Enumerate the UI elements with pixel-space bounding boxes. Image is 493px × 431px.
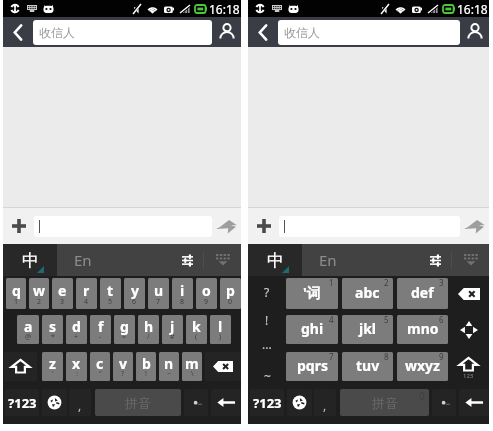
button[interactable]: k <box>186 315 207 344</box>
button[interactable]: '词 <box>286 278 338 309</box>
button[interactable]: a <box>17 315 39 344</box>
button[interactable]: Back <box>3 17 33 47</box>
staticText: 6 <box>439 315 444 325</box>
button[interactable]: i <box>172 278 193 309</box>
button[interactable]: Back <box>248 17 278 47</box>
button[interactable]: e <box>52 278 73 309</box>
button[interactable]: Move cursor <box>448 315 489 344</box>
staticText: pqrs <box>297 356 328 375</box>
button[interactable]: 收信人 <box>33 20 212 45</box>
button[interactable]: 中 <box>248 244 302 276</box>
button[interactable]: ?123 <box>5 389 39 416</box>
staticText: 收信人 <box>39 25 75 40</box>
button[interactable]: f <box>90 315 111 344</box>
button[interactable]: Contacts <box>460 17 489 47</box>
staticText: , <box>78 397 82 413</box>
staticText: 8 <box>180 297 185 307</box>
button[interactable] <box>184 389 208 416</box>
button[interactable]: , <box>314 389 336 416</box>
staticText: 3 <box>60 297 65 307</box>
button[interactable]: c <box>90 352 110 381</box>
button[interactable]: ! <box>248 306 286 334</box>
button[interactable]: ··· <box>248 334 286 362</box>
button[interactable]: l <box>210 315 231 344</box>
staticText: l <box>218 317 223 336</box>
button[interactable]: , <box>69 389 91 416</box>
staticText: - <box>99 332 102 342</box>
button[interactable]: z <box>42 352 63 381</box>
button[interactable]: Hide keyboard <box>204 244 241 276</box>
button[interactable]: v <box>113 352 133 381</box>
button[interactable]: Enter <box>211 389 241 416</box>
button[interactable]: Backspace <box>205 352 241 381</box>
staticText: : <box>76 369 78 379</box>
button[interactable]: j <box>162 315 183 344</box>
button[interactable]: Keyboard settings <box>419 244 451 276</box>
button[interactable]: Contacts <box>212 17 241 47</box>
button[interactable]: x <box>66 352 87 381</box>
button[interactable]: wxyz <box>397 352 448 381</box>
button[interactable]: g <box>114 315 135 344</box>
button[interactable]: abc <box>342 278 393 309</box>
button[interactable] <box>279 216 460 237</box>
staticText: t <box>107 281 114 300</box>
button[interactable]: n <box>159 352 179 381</box>
button[interactable]: ghi <box>286 315 338 344</box>
staticText: En <box>74 250 92 270</box>
button[interactable]: ?123 <box>250 389 284 416</box>
button[interactable]: Keyboard settings <box>171 244 203 276</box>
button[interactable]: Switch language <box>42 389 67 416</box>
staticText: b <box>142 354 151 373</box>
button[interactable]: w <box>29 278 49 309</box>
button[interactable]: Shift <box>448 352 489 381</box>
button[interactable]: h <box>138 315 159 344</box>
button[interactable] <box>432 389 456 416</box>
staticText: = <box>122 332 127 342</box>
staticText: x <box>72 354 81 373</box>
button[interactable]: ~ <box>248 362 286 389</box>
staticText: * <box>51 332 55 342</box>
button[interactable]: def <box>397 278 448 309</box>
staticText: / <box>147 332 150 342</box>
button[interactable]: 拼音 <box>95 389 181 416</box>
button[interactable]: r <box>76 278 97 309</box>
button[interactable]: m <box>182 352 202 381</box>
button[interactable] <box>34 216 212 237</box>
button[interactable]: ? <box>248 278 286 306</box>
staticText: 1 <box>329 278 334 288</box>
button[interactable]: u <box>148 278 169 309</box>
button[interactable]: y <box>124 278 145 309</box>
button[interactable]: Switch language <box>287 389 312 416</box>
staticText: f <box>98 317 104 336</box>
button[interactable]: pqrs <box>286 352 338 381</box>
button[interactable]: o <box>196 278 217 309</box>
staticText: o <box>202 281 211 300</box>
button[interactable]: tuv <box>342 352 393 381</box>
button[interactable]: Send <box>212 208 241 244</box>
button[interactable]: s <box>42 315 63 344</box>
button[interactable]: En <box>302 244 419 276</box>
button[interactable]: jkl <box>342 315 393 344</box>
button[interactable]: Send <box>460 208 489 244</box>
button[interactable]: p <box>220 278 241 309</box>
button[interactable]: mno <box>397 315 448 344</box>
button[interactable]: d <box>66 315 87 344</box>
staticText: 收信人 <box>284 25 320 40</box>
button[interactable]: 中 <box>3 244 57 276</box>
button[interactable]: Add attachment <box>248 208 279 244</box>
button[interactable]: Add attachment <box>3 208 34 244</box>
button[interactable]: En <box>57 244 171 276</box>
staticText: i <box>180 281 185 300</box>
button[interactable]: Hide keyboard <box>452 244 489 276</box>
button[interactable]: Backspace <box>448 278 489 309</box>
button[interactable]: Enter <box>459 389 489 416</box>
button[interactable]: 收信人 <box>278 20 460 45</box>
button[interactable]: q <box>6 278 26 309</box>
button[interactable]: 拼音 <box>340 389 429 416</box>
staticText: ghi <box>301 319 324 338</box>
staticText: mno <box>407 319 439 338</box>
staticText: 0 <box>419 389 425 403</box>
button[interactable]: t <box>100 278 121 309</box>
button[interactable]: Shift <box>4 352 37 381</box>
button[interactable]: b <box>136 352 156 381</box>
